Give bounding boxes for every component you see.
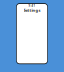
staticText: 9:41	[28, 4, 35, 7]
staticText: Settings	[23, 7, 40, 13]
